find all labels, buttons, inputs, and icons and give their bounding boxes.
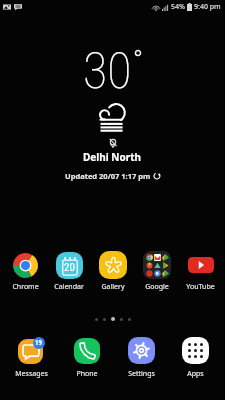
button[interactable]: Google	[135, 251, 179, 292]
button[interactable]: YouTube	[179, 251, 222, 292]
button[interactable]: Settings	[114, 337, 169, 379]
staticText: Gallery	[101, 282, 125, 292]
staticText: Chrome	[12, 282, 39, 292]
staticText: Delhi North	[83, 150, 142, 164]
staticText: 20	[64, 261, 75, 274]
staticText: Updated 20/07 1:17 pm	[65, 171, 151, 181]
staticText: Calendar	[54, 282, 84, 292]
staticText: 9:40 pm	[194, 2, 221, 12]
staticText: Google	[145, 282, 169, 292]
staticText: Settings	[128, 369, 155, 379]
staticText: 19	[35, 339, 43, 347]
button[interactable]: Apps	[169, 337, 221, 379]
staticText: YouTube	[186, 282, 215, 292]
staticText: Phone	[76, 369, 98, 379]
other: Refresh	[153, 172, 161, 180]
staticText: Messages	[15, 369, 48, 379]
button[interactable]: Gallery	[91, 251, 135, 292]
staticText: 54%	[171, 2, 185, 12]
button[interactable]: Chrome	[3, 251, 47, 292]
button[interactable]: Phone	[59, 337, 114, 379]
button[interactable]: 20	[47, 251, 91, 292]
staticText: 30	[83, 42, 132, 101]
button[interactable]: 19	[4, 337, 59, 379]
staticText: Apps	[187, 369, 204, 379]
button[interactable]: 30	[0, 42, 225, 181]
